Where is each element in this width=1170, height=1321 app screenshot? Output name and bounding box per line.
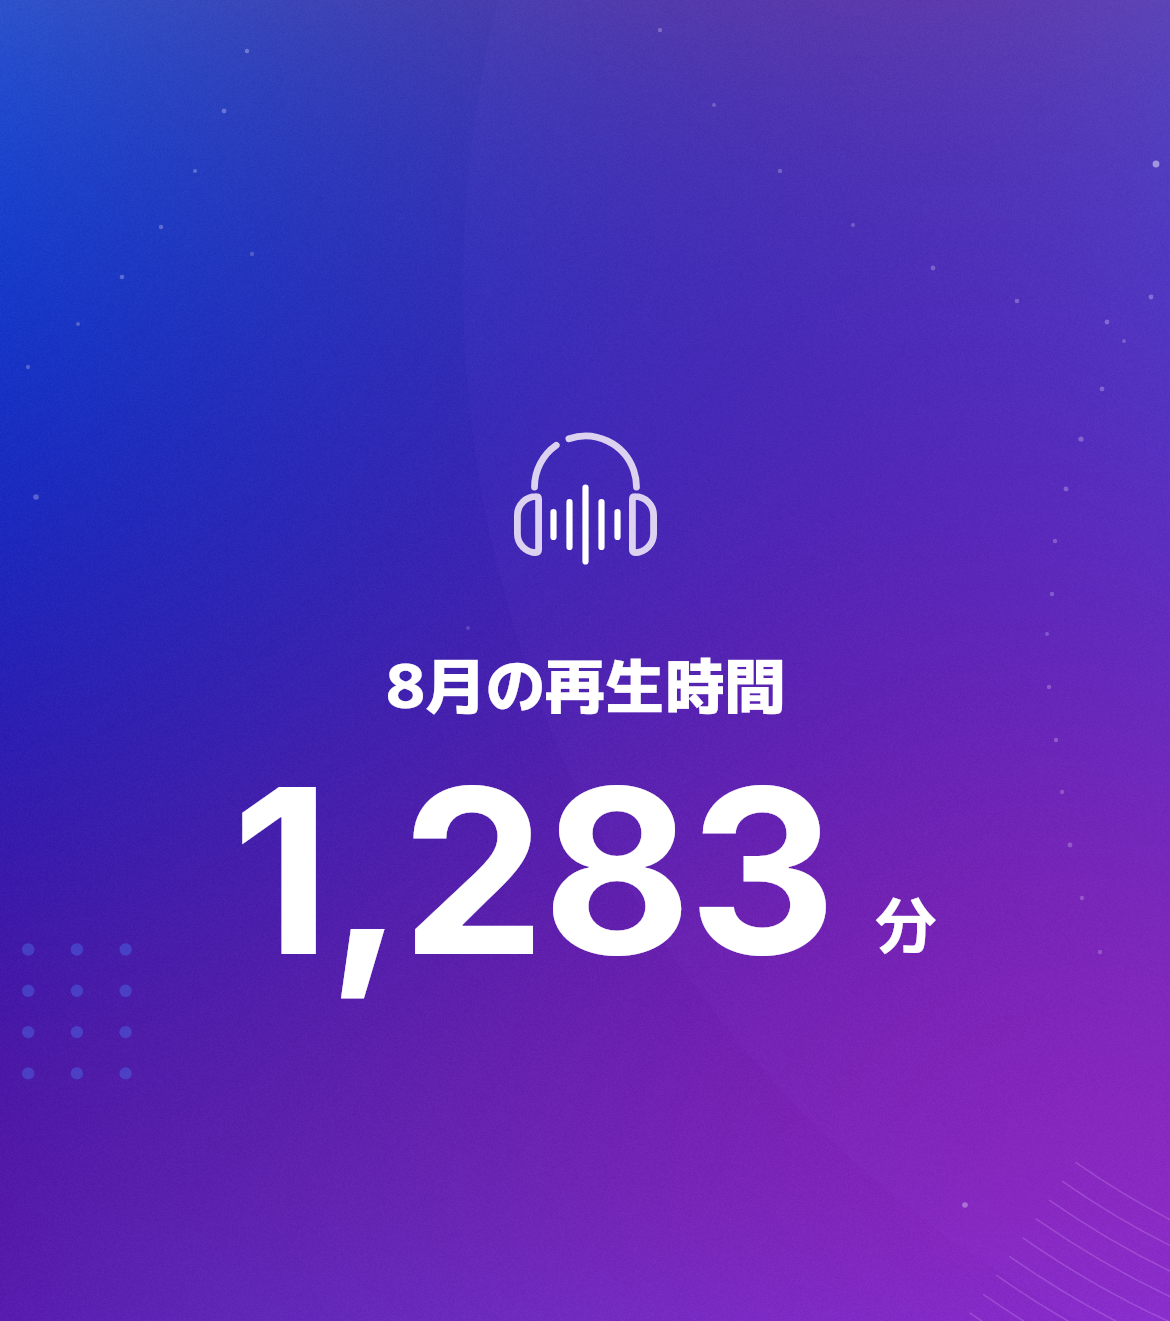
button[interactable]: Listening time [0, 0, 1170, 1321]
staticText: 分 [875, 880, 938, 966]
staticText: 8月の再生時間 [386, 643, 785, 727]
staticText: 1,283 [232, 732, 834, 1009]
other: Listening time [508, 427, 664, 563]
